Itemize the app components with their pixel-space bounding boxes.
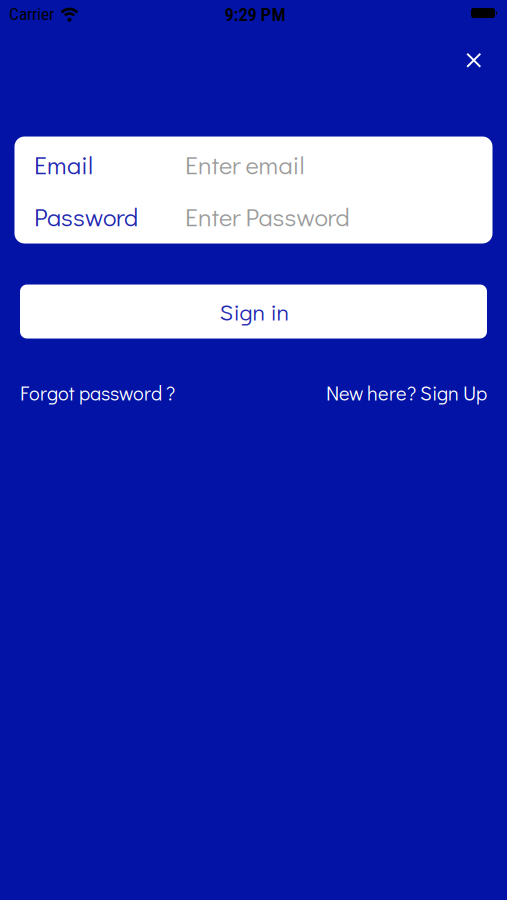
staticText: Carrier bbox=[9, 4, 54, 24]
button[interactable]: Email bbox=[14, 137, 492, 191]
staticText: Sign in bbox=[219, 296, 289, 327]
staticText: Password bbox=[34, 200, 138, 233]
button[interactable]: Forgot password ? bbox=[20, 379, 175, 406]
staticText: Email bbox=[34, 148, 93, 181]
staticText: Forgot password ? bbox=[20, 379, 175, 406]
button[interactable] bbox=[458, 45, 489, 75]
button[interactable]: Sign in bbox=[20, 284, 487, 338]
staticText: Password bbox=[245, 200, 349, 233]
button[interactable]: Password bbox=[14, 191, 492, 244]
staticText: Enter bbox=[185, 148, 241, 181]
staticText: Enter bbox=[185, 200, 241, 233]
staticText: New here? Sign Up bbox=[326, 379, 487, 406]
staticText: 9:29 PM bbox=[224, 4, 285, 25]
button[interactable]: New here? Sign Up bbox=[326, 379, 487, 406]
staticText: email bbox=[245, 148, 304, 181]
